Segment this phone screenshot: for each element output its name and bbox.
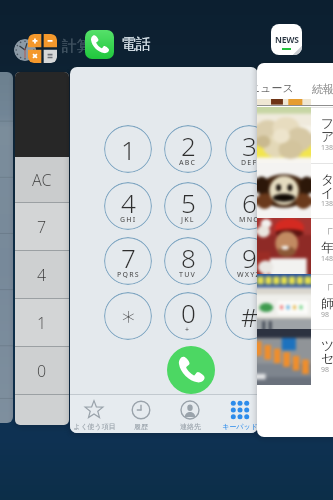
- staticText: ニュース: [257, 81, 294, 95]
- staticText: TUV: [179, 270, 197, 280]
- staticText: 4: [121, 185, 136, 220]
- button[interactable]: キーパッド: [216, 394, 258, 432]
- staticText: 「: [321, 226, 333, 242]
- button[interactable]: AC: [15, 157, 69, 203]
- staticText: WXYZ: [237, 270, 258, 280]
- staticText: MNO: [239, 215, 258, 225]
- button[interactable]: 履歴: [117, 394, 165, 432]
- button[interactable]: 0: [164, 292, 212, 340]
- button[interactable]: 連絡先: [166, 394, 214, 432]
- button[interactable]: 2: [164, 125, 212, 173]
- staticText: 6: [242, 185, 257, 220]
- button[interactable]: ニュース: [257, 63, 333, 437]
- staticText: 連絡先: [180, 422, 201, 431]
- staticText: GHI: [120, 215, 137, 225]
- staticText: 師: [321, 295, 333, 311]
- button[interactable]: News app: [271, 24, 302, 55]
- button[interactable]: ツ: [257, 329, 333, 385]
- staticText: 7: [37, 216, 47, 238]
- staticText: JKL: [181, 215, 195, 225]
- button[interactable]: [0, 72, 13, 423]
- staticText: 5: [181, 185, 196, 220]
- button[interactable]: 0: [15, 347, 69, 395]
- staticText: 98: [321, 310, 330, 320]
- button[interactable]: 8: [164, 237, 212, 285]
- staticText: よく使う項目: [73, 422, 116, 431]
- button[interactable]: 9: [225, 237, 258, 285]
- staticText: 138: [321, 199, 333, 209]
- button[interactable]: 6: [225, 182, 258, 230]
- staticText: ABC: [179, 158, 197, 168]
- staticText: 1: [121, 132, 136, 167]
- staticText: 計算: [62, 37, 92, 56]
- staticText: 「: [321, 282, 333, 298]
- staticText: フ: [321, 115, 333, 131]
- staticText: 続報ch: [312, 81, 333, 96]
- staticText: 電話: [121, 35, 151, 54]
- button[interactable]: 5: [164, 182, 212, 230]
- staticText: +: [185, 325, 191, 335]
- staticText: キーパッド: [222, 422, 258, 431]
- button[interactable]: #: [225, 292, 258, 340]
- button[interactable]: 1: [70, 67, 258, 433]
- staticText: 1: [37, 312, 47, 334]
- button[interactable]: 1: [104, 125, 152, 173]
- staticText: ツ: [321, 337, 333, 353]
- button[interactable]: 4: [15, 251, 69, 299]
- staticText: PQRS: [117, 270, 140, 280]
- staticText: 0: [37, 360, 47, 382]
- staticText: 138: [321, 143, 333, 153]
- button[interactable]: 7: [104, 237, 152, 285]
- staticText: 98: [321, 365, 330, 375]
- button[interactable]: 「: [257, 274, 333, 330]
- staticText: AC: [32, 169, 52, 191]
- button[interactable]: ∗: [104, 292, 152, 340]
- button[interactable]: 4: [104, 182, 152, 230]
- button[interactable]: タ: [257, 163, 333, 219]
- staticText: NEWS: [275, 34, 299, 46]
- staticText: 9: [242, 240, 257, 275]
- button[interactable]: よく使う項目: [70, 394, 118, 432]
- staticText: タ: [321, 171, 333, 187]
- button[interactable]: 「: [257, 218, 333, 274]
- staticText: 4: [37, 264, 47, 286]
- button[interactable]: Phone app: [85, 30, 114, 59]
- staticText: 履歴: [134, 422, 148, 431]
- staticText: 2: [181, 128, 196, 163]
- staticText: 7: [121, 240, 136, 275]
- button[interactable]: Calculator: [28, 34, 57, 63]
- staticText: イ: [321, 184, 333, 200]
- staticText: ア: [321, 128, 333, 144]
- button[interactable]: フ: [257, 107, 333, 163]
- staticText: 8: [181, 240, 196, 275]
- staticText: 年: [321, 239, 333, 255]
- staticText: ∗: [120, 301, 137, 331]
- button[interactable]: Call: [167, 346, 215, 394]
- staticText: セ: [321, 350, 333, 366]
- staticText: 0: [181, 295, 196, 330]
- button[interactable]: AC: [15, 72, 69, 425]
- button[interactable]: 7: [15, 203, 69, 251]
- button[interactable]: 3: [225, 125, 258, 173]
- staticText: DEF: [241, 158, 258, 168]
- button[interactable]: 1: [15, 299, 69, 347]
- button[interactable]: Clock: [14, 39, 36, 61]
- staticText: 3: [242, 128, 257, 163]
- staticText: 148: [321, 254, 333, 264]
- staticText: #: [241, 299, 258, 334]
